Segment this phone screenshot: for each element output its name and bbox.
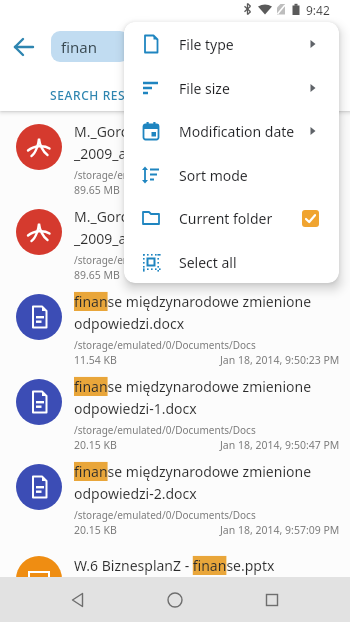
staticText: Jan 18, 2014, 9:50:23 PM (220, 353, 340, 367)
button[interactable] (58, 584, 98, 622)
button[interactable]: M._Gorczynska (0, 111, 350, 196)
staticText: odpowiedzi.docx (74, 314, 185, 333)
button[interactable]: W.6 BiznesplanZ - finanse.pptx (0, 536, 350, 622)
staticText: 89.65 MB (74, 183, 120, 197)
staticText: finan (61, 37, 97, 57)
staticText: Sort mode (179, 166, 248, 185)
staticText: /storage/emulated/0/Documents/Docs (74, 423, 256, 437)
button[interactable]: Select all (124, 240, 339, 283)
staticText: finanse międzynarodowe zmienione (74, 292, 312, 311)
staticText: Jan 18, 2014, 9:50:47 PM (220, 438, 340, 452)
staticText: finanse międzynarodowe zmienione (74, 462, 312, 481)
staticText: 9:42 (306, 2, 330, 18)
staticText: 11.54 KB (74, 353, 117, 367)
staticText: /storage/emulated/0/Documents/Docs (74, 338, 256, 352)
staticText: Current folder (179, 209, 273, 228)
staticText: finanse międzynarodowe zmienione (74, 377, 312, 396)
button[interactable]: Modification date (124, 109, 339, 153)
button[interactable]: finanse międzynarodowe zmienione (0, 281, 350, 366)
button[interactable]: Current folder (124, 196, 339, 240)
button[interactable]: File type (124, 22, 339, 66)
staticText: odpowiedzi-1.docx (74, 399, 197, 418)
staticText: Jan 18, 2014, 9:57:09 PM (220, 523, 340, 537)
staticText: _2009_analiza (74, 229, 165, 248)
button[interactable] (12, 35, 36, 59)
staticText: /storage/emulated/0/Download (74, 253, 223, 267)
button[interactable]: finanse międzynarodowe zmienione (0, 451, 350, 536)
staticText: Select all (179, 253, 237, 272)
button[interactable]: File size (124, 66, 339, 110)
button[interactable] (155, 584, 195, 622)
button[interactable]: Sort mode (124, 153, 339, 197)
staticText: SEARCH RESULTS (50, 87, 157, 103)
staticText: M._Gorczynska (74, 122, 172, 141)
staticText: M._Gorczynska (74, 207, 172, 226)
staticText: _2009_analiza (74, 144, 165, 163)
staticText: 20.15 KB (74, 523, 117, 537)
button[interactable]: M._Gorczynska (0, 196, 350, 281)
staticText: /storage/emulated/0/Download (74, 168, 223, 182)
staticText: odpowiedzi-2.docx (74, 484, 197, 503)
staticText: 20.15 KB (74, 438, 117, 452)
staticText: 89.65 MB (74, 268, 120, 282)
staticText: /storage/emulated/0/Documents/Docs (74, 508, 256, 522)
staticText: File type (179, 35, 234, 54)
button[interactable]: finanse międzynarodowe zmienione (0, 366, 350, 451)
button[interactable]: finan (51, 31, 129, 62)
staticText: File size (179, 79, 230, 98)
staticText: W.6 BiznesplanZ - finanse.pptx (74, 556, 275, 575)
staticText: Modification date (179, 122, 295, 141)
button[interactable] (252, 584, 292, 622)
